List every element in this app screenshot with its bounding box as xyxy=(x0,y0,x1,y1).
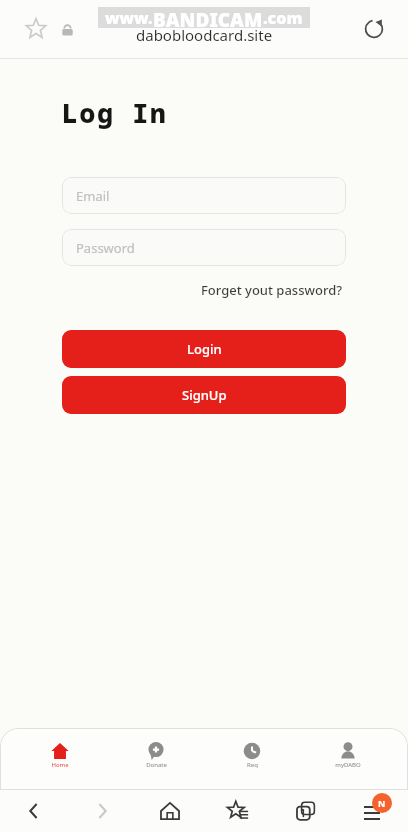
staticText: Log In xyxy=(62,95,168,130)
button[interactable]: Tabs xyxy=(286,791,326,831)
button[interactable]: Bookmarks xyxy=(218,791,258,831)
staticText: Donate xyxy=(146,761,167,769)
staticText: Req xyxy=(247,761,258,769)
staticText: N xyxy=(378,797,386,809)
staticText: Home xyxy=(51,761,69,769)
staticText: BANDICAM xyxy=(153,7,263,28)
button[interactable]: Donate xyxy=(121,742,191,769)
button[interactable]: Reload page xyxy=(356,11,392,47)
button[interactable]: Site security xyxy=(52,14,82,44)
staticText: .com xyxy=(263,7,303,28)
staticText: dabobloodcard.site xyxy=(136,25,273,45)
button[interactable]: Home xyxy=(25,742,95,769)
button[interactable]: Email xyxy=(62,177,346,214)
button[interactable]: myDABO xyxy=(313,742,383,769)
staticText: Password xyxy=(76,239,135,257)
staticText: www. xyxy=(105,7,153,28)
button[interactable]: Forget yout password? xyxy=(198,278,346,302)
button[interactable]: Forward xyxy=(82,791,122,831)
staticText: Forget yout password? xyxy=(201,281,343,299)
button[interactable]: Menu xyxy=(354,791,394,831)
button[interactable]: Home xyxy=(150,791,190,831)
button[interactable]: SignUp xyxy=(62,376,346,414)
button[interactable]: Req xyxy=(217,742,287,769)
button[interactable]: Password xyxy=(62,229,346,266)
staticText: myDABO xyxy=(335,761,361,769)
button[interactable]: Bookmark xyxy=(18,11,54,47)
button[interactable]: Back xyxy=(14,791,54,831)
button[interactable]: Login xyxy=(62,330,346,368)
staticText: Login xyxy=(187,340,222,358)
staticText: SignUp xyxy=(182,386,227,404)
staticText: Email xyxy=(76,187,110,205)
